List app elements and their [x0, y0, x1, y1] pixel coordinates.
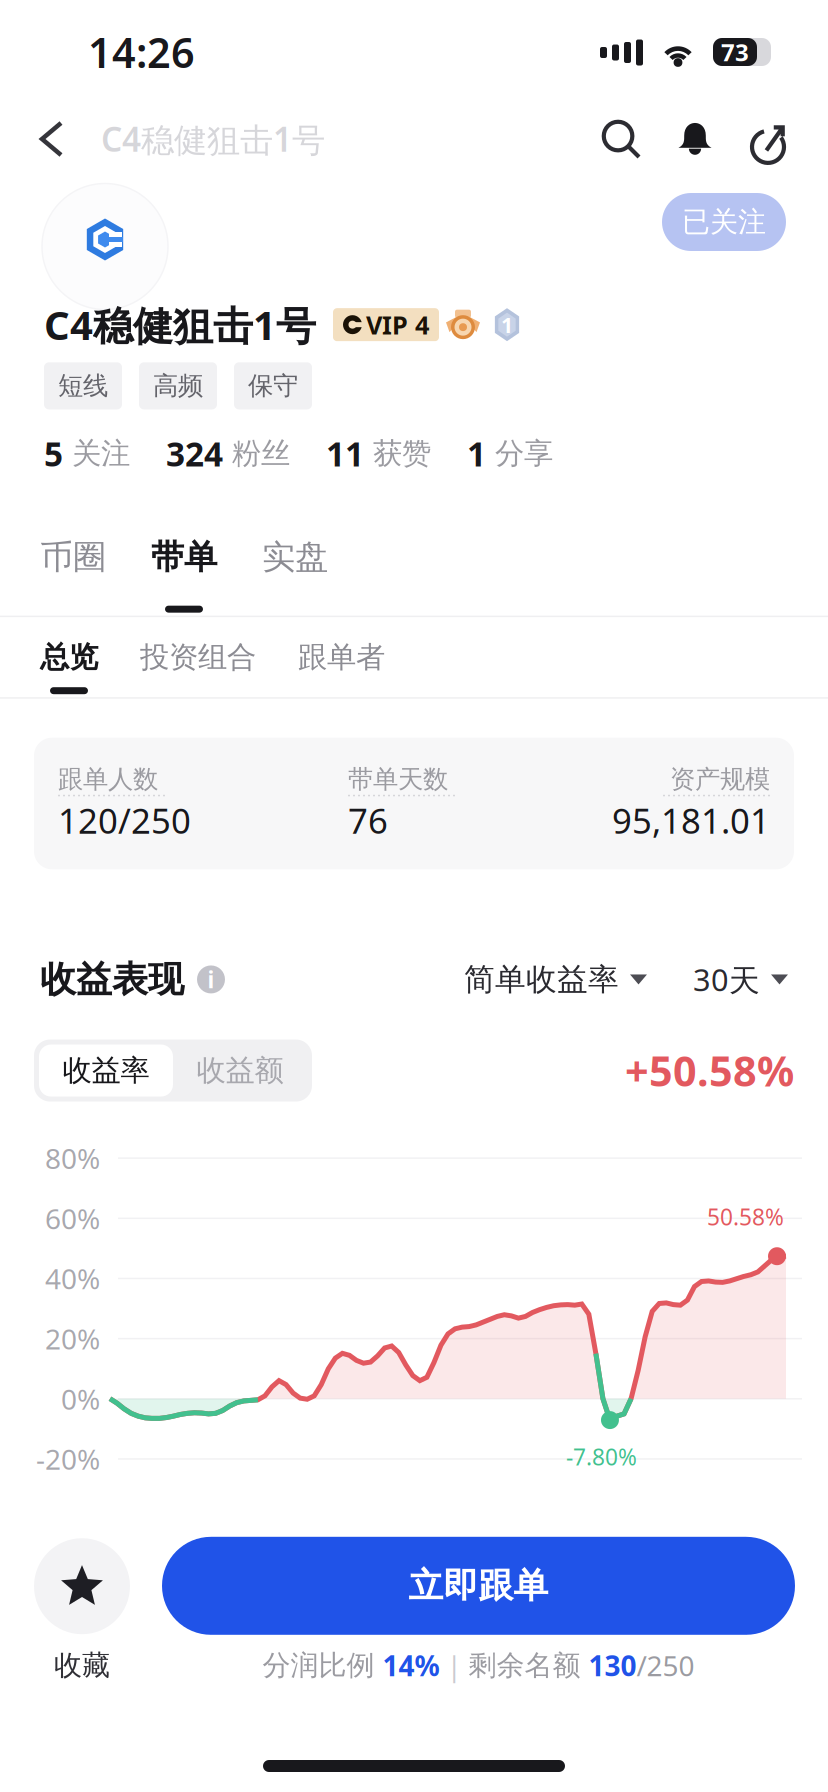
- staticText: 资产规模: [670, 764, 770, 795]
- staticText: VIP 4: [366, 308, 429, 341]
- button[interactable]: Share: [732, 104, 804, 174]
- staticText: 粉丝: [232, 436, 290, 472]
- staticText: 30天: [693, 959, 760, 1000]
- staticText: 14:26: [88, 25, 195, 79]
- staticText: 带单天数: [348, 764, 448, 795]
- staticText: 40%: [45, 1260, 100, 1297]
- button[interactable]: 投资组合: [134, 639, 262, 697]
- staticText: 14%: [382, 1647, 439, 1684]
- staticText: 投资组合: [140, 639, 256, 675]
- button[interactable]: Search: [584, 104, 658, 174]
- staticText: 获赞: [373, 436, 431, 472]
- staticText: 11: [326, 431, 364, 476]
- staticText: 已关注: [682, 205, 766, 239]
- staticText: i: [207, 964, 214, 994]
- button[interactable]: 收益额: [173, 1044, 307, 1096]
- staticText: 收益额: [196, 1052, 283, 1088]
- staticText: 60%: [45, 1200, 100, 1237]
- staticText: 5: [44, 431, 63, 476]
- staticText: 80%: [45, 1139, 100, 1177]
- button[interactable]: 立即跟单: [162, 1537, 795, 1635]
- staticText: 实盘: [262, 537, 328, 578]
- staticText: 95,181.01: [612, 797, 770, 843]
- button[interactable]: 总览: [34, 639, 104, 697]
- staticText: -7.80%: [566, 1441, 637, 1472]
- staticText: 1: [467, 431, 486, 476]
- button[interactable]: 跟单者: [292, 639, 391, 697]
- staticText: 短线: [58, 370, 108, 401]
- staticText: |: [439, 1647, 468, 1684]
- staticText: 0%: [61, 1380, 100, 1417]
- button[interactable]: 收益率: [39, 1044, 173, 1096]
- staticText: 简单收益率: [464, 961, 619, 998]
- staticText: 收益表现: [40, 957, 184, 1001]
- staticText: 币圈: [40, 537, 106, 578]
- staticText: 跟单人数: [58, 764, 158, 795]
- staticText: 120/250: [58, 797, 191, 843]
- staticText: +50.58%: [625, 1043, 794, 1098]
- staticText: 76: [348, 797, 388, 843]
- staticText: 剩余名额: [468, 1648, 588, 1683]
- staticText: 分润比例: [262, 1648, 382, 1683]
- staticText: 总览: [40, 639, 98, 675]
- staticText: 20%: [45, 1320, 100, 1357]
- button[interactable]: 30天: [693, 959, 788, 1000]
- staticText: 1: [501, 310, 513, 339]
- staticText: C4稳健狙击1号: [101, 117, 325, 161]
- staticText: 带单: [151, 537, 217, 578]
- staticText: 高频: [153, 370, 203, 401]
- button[interactable]: 带单: [145, 537, 223, 616]
- staticText: 73: [721, 36, 749, 68]
- button[interactable]: Notifications: [658, 104, 732, 174]
- button[interactable]: 实盘: [256, 537, 334, 616]
- staticText: /250: [636, 1647, 694, 1684]
- staticText: 跟单者: [298, 639, 385, 675]
- staticText: 立即跟单: [408, 1564, 548, 1607]
- staticText: 324: [166, 431, 223, 476]
- staticText: C4稳健狙击1号: [44, 298, 316, 351]
- staticText: 收益率: [62, 1052, 149, 1088]
- button[interactable]: Back: [20, 104, 83, 174]
- staticText: 50.58%: [707, 1201, 784, 1232]
- staticText: 130: [588, 1647, 636, 1684]
- button[interactable]: 收藏: [34, 1538, 130, 1683]
- button[interactable]: 简单收益率: [464, 961, 647, 998]
- button[interactable]: 已关注: [662, 193, 786, 251]
- staticText: 保守: [248, 370, 298, 401]
- button[interactable]: Info: [197, 964, 225, 994]
- staticText: 收藏: [54, 1648, 110, 1683]
- staticText: 分享: [495, 436, 553, 472]
- staticText: -20%: [36, 1440, 100, 1478]
- staticText: 关注: [72, 436, 130, 472]
- button[interactable]: 币圈: [34, 537, 112, 616]
